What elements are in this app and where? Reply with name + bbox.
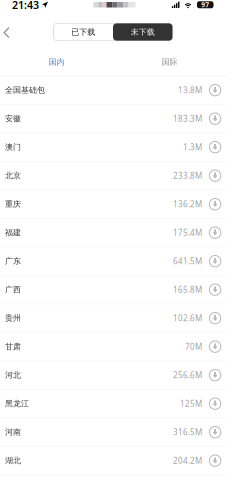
staticText: 175.4M [173,227,202,238]
staticText: 256.6M [173,370,202,380]
button[interactable]: 国内 [0,55,113,69]
button[interactable]: 甘肃 [0,333,226,361]
button[interactable]: 已下载 [53,23,113,41]
staticText: 福建 [5,228,21,237]
button[interactable]: 福建 [0,219,226,247]
staticText: 全国基础包 [5,85,45,95]
staticText: 河南 [5,427,21,437]
staticText: 21:43 [12,0,39,12]
button[interactable]: 河北 [0,361,226,390]
staticText: 河北 [5,370,21,380]
staticText: 136.2M [173,199,202,209]
staticText: 183.3M [173,113,202,124]
staticText: 湖北 [5,456,21,465]
staticText: 97 [201,0,209,9]
staticText: 165.8M [173,284,202,295]
button[interactable]: 国际 [113,55,226,69]
staticText: 未下载 [131,27,155,37]
staticText: 贵州 [5,313,21,323]
staticText: 204.2M [173,455,202,466]
staticText: 13.8M [178,85,202,95]
button[interactable]: 黑龙江 [0,390,226,418]
staticText: 国际 [161,57,177,67]
staticText: 233.8M [173,170,202,181]
staticText: 316.5M [173,427,202,437]
button[interactable]: 重庆 [0,190,226,219]
button[interactable]: 未下载 [113,23,172,41]
staticText: 102.6M [173,313,202,323]
button[interactable]: 广西 [0,276,226,304]
staticText: 广东 [5,256,21,266]
button[interactable]: 湖北 [0,447,226,475]
button[interactable]: Back [0,22,13,42]
staticText: 1.3M [183,142,202,152]
button[interactable]: 广东 [0,247,226,276]
staticText: 甘肃 [5,342,21,351]
staticText: 澳门 [5,142,21,152]
staticText: 125M [180,398,202,409]
staticText: 重庆 [5,199,21,209]
button[interactable]: 安徽 [0,105,226,133]
staticText: 641.5M [173,256,202,266]
button[interactable]: 河南 [0,418,226,447]
button[interactable]: 贵州 [0,304,226,333]
staticText: 北京 [5,171,21,180]
staticText: 黑龙江 [5,399,29,408]
staticText: 已下载 [71,27,95,37]
staticText: 安徽 [5,114,21,123]
staticText: 70M [185,341,202,352]
staticText: 广西 [5,285,21,294]
staticText: 国内 [48,57,64,67]
button[interactable]: 北京 [0,162,226,190]
button[interactable]: 全国基础包 [0,76,226,105]
button[interactable]: 澳门 [0,133,226,162]
